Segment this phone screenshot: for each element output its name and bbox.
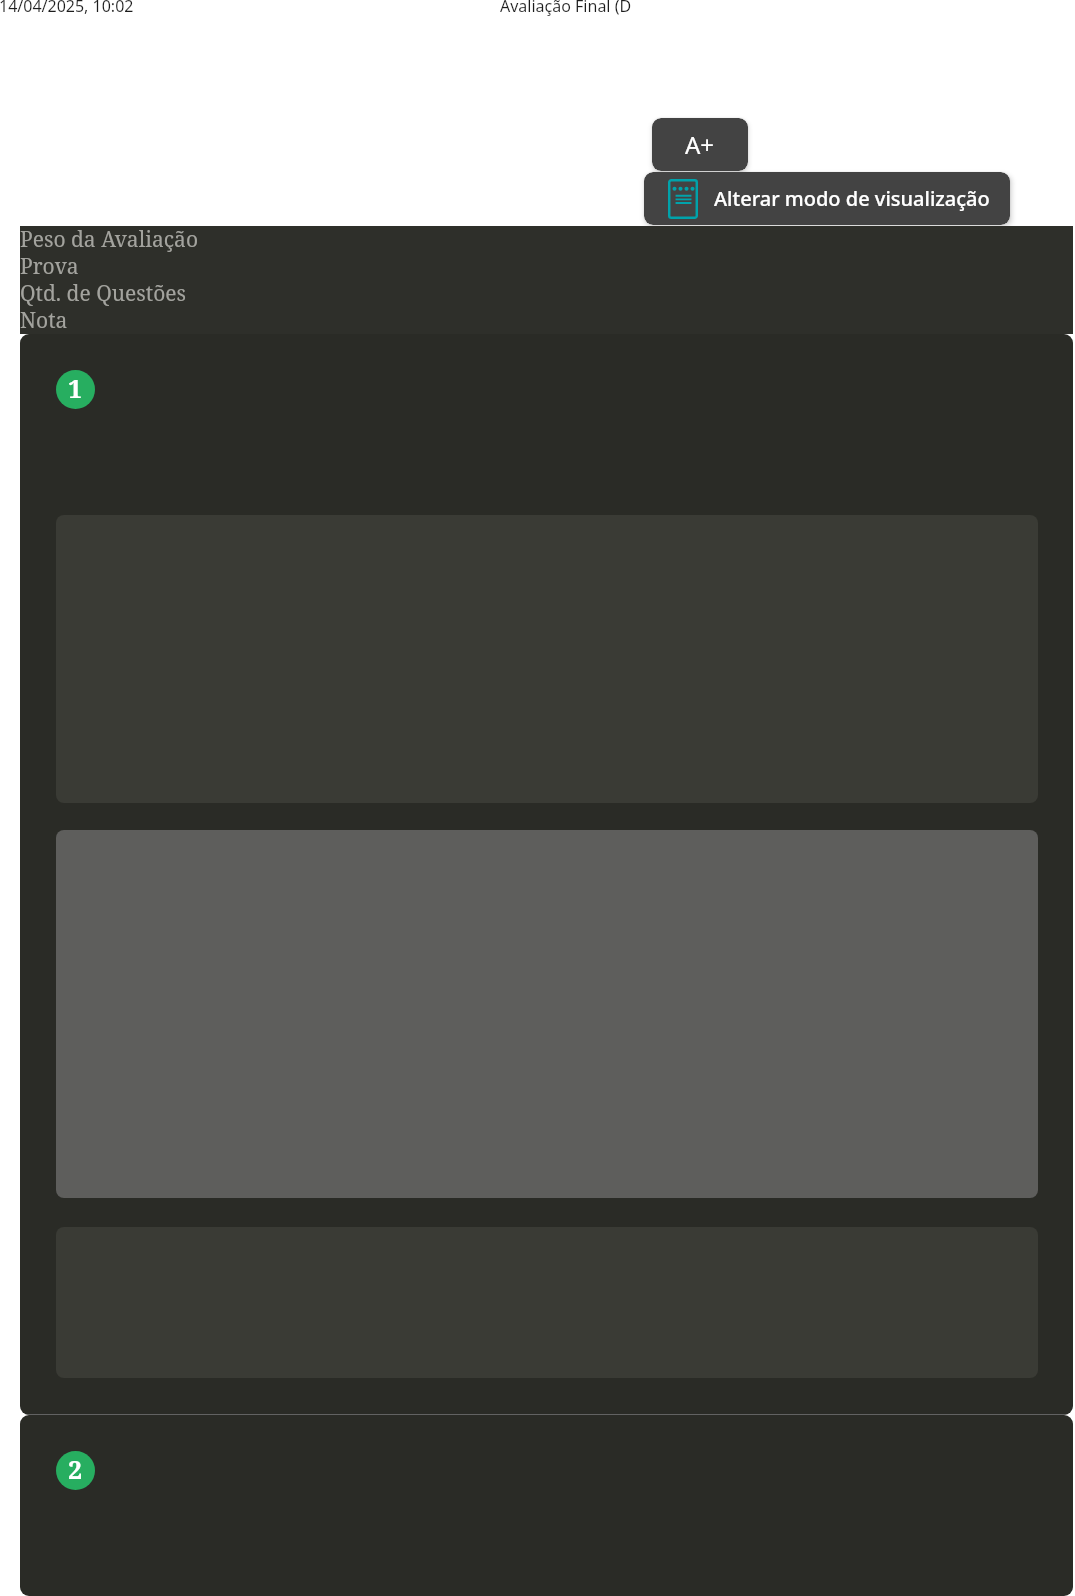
staticText: A+ [685,128,715,161]
staticText: 1 [68,371,83,405]
button[interactable]: 1 [20,334,1073,1415]
staticText: Alterar modo de visualização [714,185,990,212]
staticText: 2 [68,1452,83,1486]
staticText: 14/04/2025, 10:02 [0,0,134,17]
staticText: Peso da Avaliação Prova Qtd. de Questões… [20,225,198,333]
button[interactable]: Alterar modo de visualização [644,172,1010,225]
other: Alterar modo de visualização [668,179,698,219]
button[interactable]: 2 [20,1415,1073,1596]
button[interactable]: Aumentar fonte [652,118,748,171]
staticText: Avaliação Final (D [500,0,632,17]
